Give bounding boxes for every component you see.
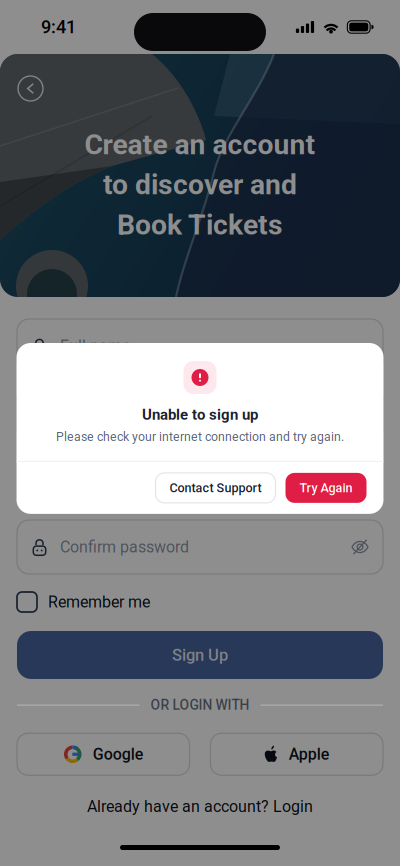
button[interactable]: Already have an account? Login: [87, 797, 313, 816]
staticText: OR LOGIN WITH: [150, 697, 249, 713]
staticText: Apple: [289, 745, 330, 764]
button[interactable]: Contact Support: [155, 473, 275, 503]
staticText: 9:41: [41, 16, 76, 38]
button[interactable]: Try Again: [285, 473, 366, 503]
staticText: Please check your internet connection an…: [56, 429, 344, 444]
button[interactable]: Back: [18, 76, 43, 101]
staticText: Full name: [60, 337, 130, 355]
staticText: Book Tickets: [117, 208, 283, 241]
staticText: Sign Up: [172, 645, 228, 665]
staticText: to discover and: [103, 168, 297, 201]
staticText: Confirm password: [60, 538, 189, 556]
button[interactable]: Apple: [210, 733, 383, 775]
button[interactable]: Google: [17, 733, 189, 775]
staticText: Unable to sign up: [142, 406, 258, 423]
staticText: Try Again: [299, 480, 352, 495]
staticText: Already have an account? Login: [87, 797, 313, 816]
staticText: Create an account: [84, 128, 315, 161]
staticText: Google: [93, 745, 144, 764]
staticText: Remember me: [48, 593, 150, 611]
staticText: Contact Support: [169, 480, 261, 495]
button[interactable]: Remember me: [17, 590, 383, 614]
button[interactable]: Sign Up: [17, 631, 383, 679]
